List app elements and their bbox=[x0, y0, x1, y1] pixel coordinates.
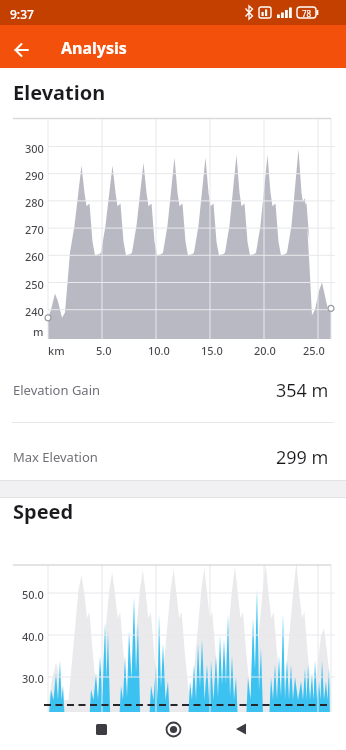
staticText: 25.0 bbox=[303, 343, 325, 355]
button[interactable] bbox=[87, 715, 115, 743]
button[interactable] bbox=[159, 715, 187, 743]
staticText: 78 bbox=[302, 8, 312, 19]
staticText: 40.0 bbox=[22, 629, 44, 641]
button[interactable] bbox=[8, 36, 36, 64]
staticText: 20.0 bbox=[254, 343, 276, 355]
staticText: Analysis bbox=[61, 37, 127, 59]
staticText: 354 m bbox=[276, 378, 329, 403]
staticText: 280 bbox=[25, 195, 44, 207]
staticText: 290 bbox=[25, 168, 44, 180]
staticText: 250 bbox=[25, 277, 44, 289]
staticText: 300 bbox=[25, 141, 44, 153]
staticText: 15.0 bbox=[201, 343, 223, 355]
staticText: km bbox=[48, 343, 65, 355]
staticText: Max Elevation bbox=[13, 448, 98, 466]
staticText: 260 bbox=[25, 249, 44, 261]
staticText: 5.0 bbox=[96, 343, 112, 355]
staticText: 270 bbox=[25, 222, 44, 234]
staticText: Elevation Gain bbox=[13, 381, 101, 399]
staticText: 30.0 bbox=[22, 671, 44, 683]
staticText: Speed bbox=[13, 498, 74, 525]
staticText: 240 bbox=[25, 304, 44, 316]
staticText: 10.0 bbox=[148, 343, 170, 355]
button[interactable]: Max Elevation bbox=[0, 429, 346, 485]
staticText: Elevation bbox=[13, 79, 106, 106]
staticText: 9:37 bbox=[10, 6, 34, 22]
button[interactable]: Elevation Gain bbox=[0, 362, 346, 418]
button[interactable] bbox=[227, 715, 255, 743]
staticText: m bbox=[33, 324, 44, 336]
staticText: 299 m bbox=[276, 445, 329, 470]
staticText: 50.0 bbox=[22, 587, 44, 599]
